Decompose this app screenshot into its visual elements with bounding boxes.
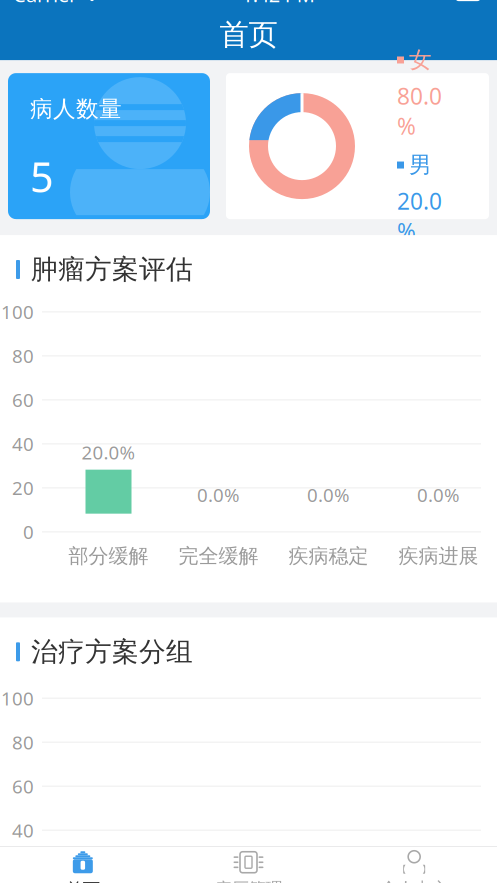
staticText: 病人数量: [30, 95, 122, 123]
staticText: 首页: [219, 17, 277, 53]
staticText: 60: [12, 774, 34, 799]
staticText: 完全缓解: [178, 544, 258, 568]
staticText: 0.0%: [307, 482, 350, 507]
staticText: 0: [23, 519, 34, 544]
staticText: 20.0%: [397, 186, 442, 246]
staticText: 首页: [66, 879, 100, 883]
button[interactable]: 女: [226, 73, 489, 219]
staticText: Carrier: [13, 0, 77, 8]
staticText: 40: [12, 818, 34, 843]
staticText: 80: [12, 730, 34, 755]
staticText: 病历管理: [214, 878, 282, 883]
staticText: 100: [1, 686, 34, 711]
staticText: 疾病稳定: [288, 544, 368, 568]
staticText: 20: [12, 475, 34, 500]
staticText: 100: [1, 299, 34, 324]
staticText: 疾病进展: [398, 544, 478, 568]
button[interactable]: 病人数量: [8, 73, 210, 219]
button[interactable]: 首页: [0, 847, 166, 883]
staticText: 部分缓解: [68, 544, 148, 568]
button[interactable]: 病历管理: [166, 847, 331, 883]
staticText: 0.0%: [417, 482, 460, 507]
button[interactable]: 个人中心: [331, 847, 497, 883]
staticText: 80: [12, 343, 34, 368]
staticText: 男: [409, 151, 432, 179]
staticText: 60: [12, 387, 34, 412]
staticText: 1:42 PM: [242, 0, 315, 8]
staticText: 肿瘤方案评估: [31, 253, 193, 286]
staticText: 治疗方案分组: [31, 635, 193, 668]
staticText: 40: [12, 431, 34, 456]
staticText: 个人中心: [380, 878, 448, 883]
staticText: 20.0%: [81, 440, 135, 465]
staticText: 80.0%: [397, 81, 442, 141]
staticText: 女: [409, 46, 432, 74]
staticText: 0.0%: [197, 482, 240, 507]
staticText: 5: [30, 149, 54, 204]
